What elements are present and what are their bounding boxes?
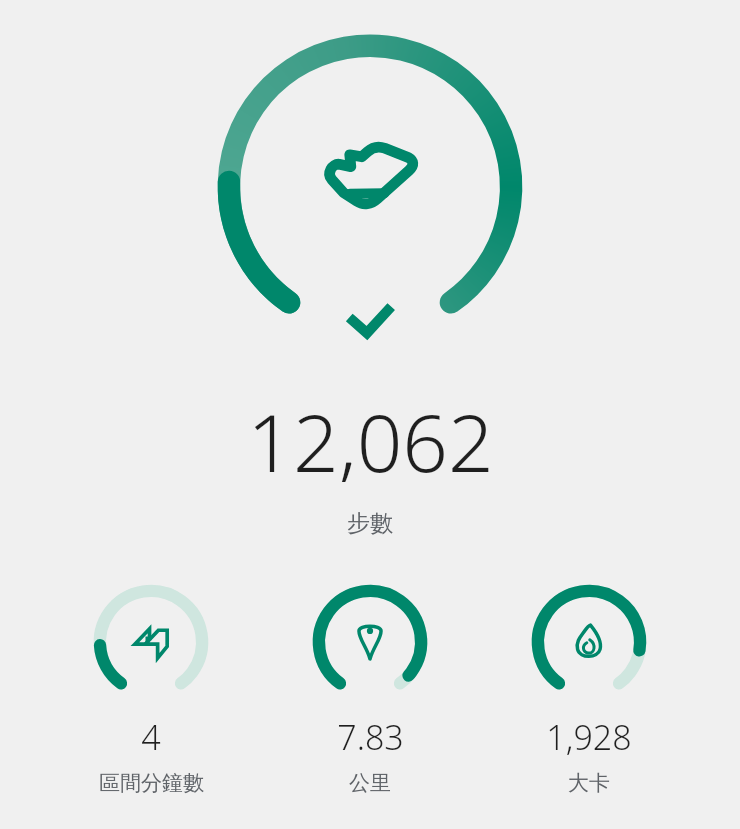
staticText: 公里 bbox=[349, 770, 391, 796]
staticText: 區間分鐘數 bbox=[99, 770, 204, 796]
staticText: 7.83 bbox=[337, 714, 404, 760]
button[interactable]: 7.83 bbox=[294, 572, 446, 796]
staticText: 4 bbox=[141, 714, 161, 760]
button[interactable]: 4 bbox=[75, 572, 227, 796]
staticText: 步數 bbox=[347, 509, 393, 538]
button[interactable]: Steps ring bbox=[200, 22, 540, 342]
staticText: 大卡 bbox=[568, 770, 610, 796]
button[interactable]: 1,928 bbox=[513, 572, 665, 796]
staticText: 12,062 bbox=[247, 386, 494, 495]
staticText: 1,928 bbox=[546, 714, 632, 760]
